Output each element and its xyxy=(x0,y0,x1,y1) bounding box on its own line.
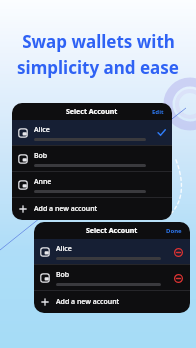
staticText: Select Account xyxy=(66,107,118,117)
button[interactable]: Wallet xyxy=(34,239,190,264)
staticText: Alice xyxy=(56,244,72,254)
button[interactable]: Remove account xyxy=(172,272,184,284)
other: Wallet xyxy=(18,128,28,138)
other: Wallet xyxy=(40,273,50,283)
button[interactable]: Done xyxy=(164,225,184,237)
staticText: Bob xyxy=(34,151,48,161)
staticText: simplicity and ease xyxy=(17,56,179,79)
other: Wallet xyxy=(18,180,28,190)
staticText: Bob xyxy=(56,270,70,280)
staticText: Edit xyxy=(152,108,164,116)
button[interactable]: Add a new account xyxy=(34,291,190,313)
other: Wallet xyxy=(18,154,28,164)
staticText: Anne xyxy=(34,177,52,187)
staticText: Alice xyxy=(34,125,50,135)
staticText: Add a new account xyxy=(56,297,120,307)
button[interactable]: Add a new account xyxy=(12,198,172,220)
button[interactable]: Remove account xyxy=(172,246,184,258)
button[interactable]: Wallet xyxy=(12,146,172,171)
other: Wallet xyxy=(40,247,50,257)
button[interactable]: Wallet xyxy=(34,265,190,290)
staticText: Add a new account xyxy=(34,204,98,214)
staticText: Select Account xyxy=(86,226,138,236)
button[interactable]: Wallet xyxy=(12,120,172,145)
staticText: Swap wallets with xyxy=(22,30,175,53)
staticText: Done xyxy=(166,227,182,235)
button[interactable]: Edit xyxy=(150,106,166,118)
button[interactable]: Wallet xyxy=(12,172,172,197)
